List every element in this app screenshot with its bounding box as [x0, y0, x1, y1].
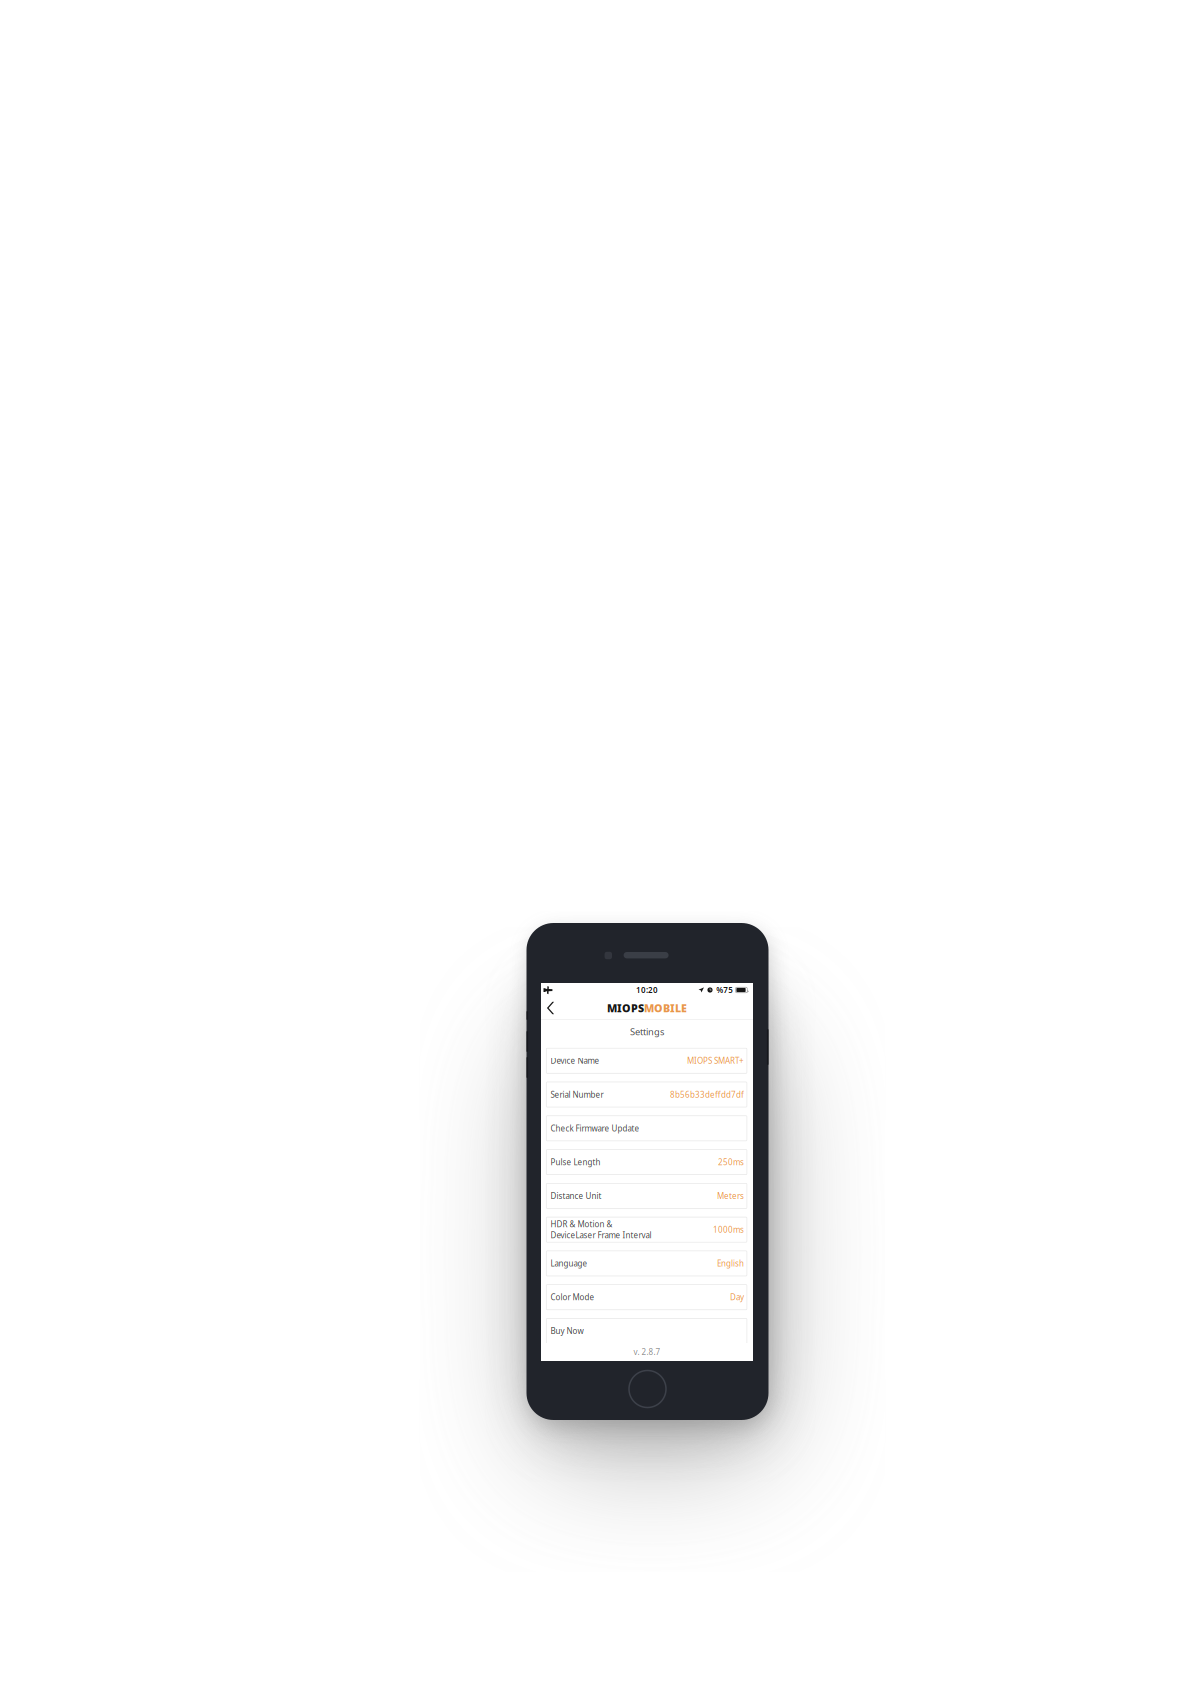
staticText: MIOPS — [607, 1001, 644, 1015]
button[interactable]: Device Name — [546, 1048, 747, 1073]
staticText: Meters — [717, 1191, 744, 1201]
button[interactable]: Language — [546, 1251, 747, 1276]
staticText: %75 — [716, 985, 733, 995]
button[interactable]: Buy Now — [546, 1318, 747, 1343]
button[interactable]: HDR & Motion & — [546, 1217, 747, 1242]
staticText: Serial Number — [550, 1089, 603, 1100]
button[interactable]: Color Mode — [546, 1285, 747, 1310]
button[interactable]: Pulse Length — [546, 1149, 747, 1175]
staticText: MIOPS SMART+ — [687, 1055, 744, 1066]
staticText: v. 2.8.7 — [633, 1347, 660, 1357]
button[interactable]: Check Firmware Update — [546, 1116, 747, 1141]
staticText: Pulse Length — [550, 1157, 600, 1167]
staticText: 250ms — [718, 1157, 744, 1167]
staticText: Day — [730, 1292, 744, 1302]
staticText: 10:20 — [636, 985, 658, 995]
staticText: Buy Now — [550, 1326, 583, 1336]
staticText: 1000ms — [713, 1224, 744, 1235]
staticText: HDR & Motion & — [550, 1219, 612, 1229]
staticText: Device Name — [550, 1055, 599, 1066]
button[interactable]: Serial Number — [546, 1082, 747, 1107]
staticText: English — [717, 1258, 744, 1269]
staticText: Settings — [630, 1025, 664, 1038]
staticText: DeviceLaser Frame Interval — [550, 1230, 651, 1240]
staticText: Distance Unit — [550, 1191, 601, 1201]
staticText: Language — [550, 1258, 587, 1269]
staticText: Check Firmware Update — [550, 1123, 639, 1134]
staticText: MOBILE — [644, 1001, 687, 1015]
staticText: 8b56b33deffdd7df — [670, 1089, 744, 1100]
staticText: Color Mode — [550, 1292, 594, 1302]
button[interactable]: Distance Unit — [546, 1183, 747, 1208]
button[interactable]: Back — [542, 997, 559, 1019]
